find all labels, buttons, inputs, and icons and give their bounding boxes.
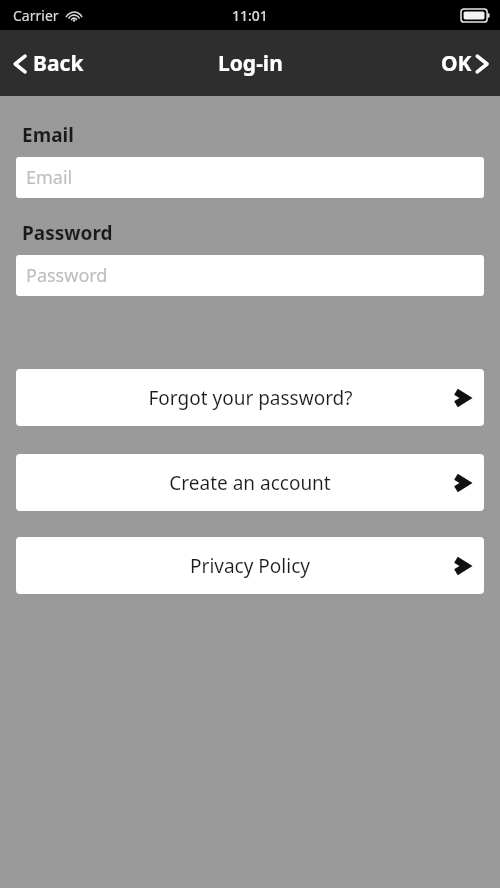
button[interactable]: Email — [16, 157, 484, 198]
button[interactable]: Back — [0, 39, 98, 88]
staticText: Password — [26, 263, 108, 288]
staticText: Back — [33, 49, 84, 78]
staticText: Privacy Policy — [190, 553, 310, 579]
staticText: Password — [22, 220, 113, 246]
button[interactable]: OK — [427, 39, 500, 88]
staticText: Forgot your password? — [148, 385, 353, 411]
staticText: Carrier — [13, 6, 59, 25]
staticText: Email — [26, 165, 73, 190]
button[interactable]: Create an account — [16, 454, 484, 511]
staticText: 11:01 — [232, 6, 268, 25]
staticText: Log-in — [218, 49, 283, 78]
staticText: OK — [441, 49, 472, 78]
button[interactable]: Privacy Policy — [16, 537, 484, 594]
staticText: Create an account — [169, 470, 331, 496]
staticText: Email — [22, 122, 74, 148]
button[interactable]: Password — [16, 255, 484, 296]
button[interactable]: Forgot your password? — [16, 369, 484, 426]
